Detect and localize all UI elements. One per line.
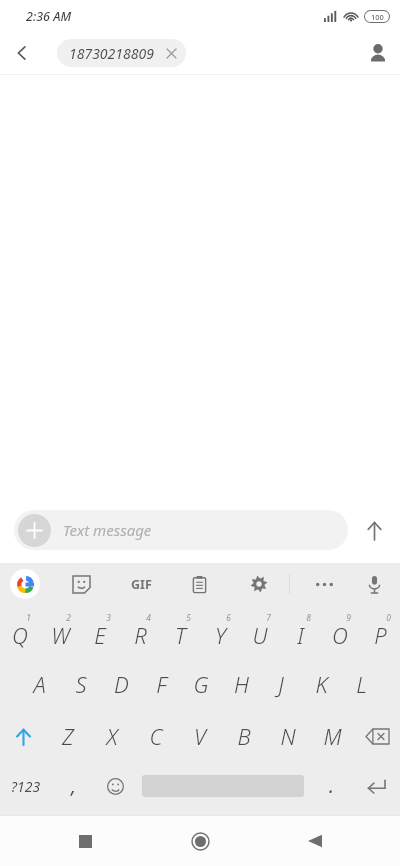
staticText: O — [332, 620, 348, 650]
button[interactable]: Add attachment — [18, 514, 51, 547]
staticText: T — [175, 620, 186, 650]
button[interactable]: U — [240, 605, 280, 658]
staticText: 6 — [226, 612, 231, 624]
button[interactable]: F — [141, 658, 181, 710]
button[interactable]: ?123 — [0, 762, 52, 810]
staticText: . — [329, 773, 334, 799]
staticText: N — [280, 721, 296, 751]
button[interactable]: I — [280, 605, 320, 658]
staticText: D — [114, 669, 129, 699]
button[interactable]: W — [40, 605, 80, 658]
button[interactable]: S — [60, 658, 101, 710]
button[interactable]: Voice input — [358, 568, 390, 600]
button[interactable]: Backspace — [354, 710, 400, 762]
staticText: 1 — [26, 612, 31, 624]
staticText: I — [297, 620, 304, 650]
button[interactable]: Shift — [0, 710, 46, 762]
staticText: 2 — [66, 612, 71, 624]
staticText: 7 — [266, 612, 271, 624]
button[interactable]: Recents — [61, 817, 109, 865]
button[interactable]: Home — [176, 817, 224, 865]
staticText: F — [156, 669, 167, 699]
staticText: G — [193, 669, 209, 699]
button[interactable]: O — [320, 605, 360, 658]
staticText: 9 — [346, 612, 351, 624]
button[interactable]: 18730218809 — [57, 39, 186, 67]
staticText: H — [234, 669, 249, 699]
staticText: 3 — [106, 612, 111, 624]
staticText: 18730218809 — [69, 44, 154, 63]
button[interactable]: Add attachment — [14, 510, 348, 550]
button[interactable]: GIF — [124, 567, 158, 601]
staticText: 5 — [186, 612, 191, 624]
button[interactable]: K — [301, 658, 341, 710]
button[interactable]: Q — [0, 605, 40, 658]
staticText: S — [75, 669, 87, 699]
button[interactable]: More options — [308, 568, 340, 600]
staticText: 2:36 AM — [26, 8, 72, 25]
button[interactable]: V — [178, 710, 222, 762]
staticText: ?123 — [11, 777, 41, 796]
button[interactable]: D — [101, 658, 141, 710]
staticText: C — [149, 721, 163, 751]
staticText: V — [194, 721, 206, 751]
button[interactable]: G — [181, 658, 221, 710]
staticText: Text message — [63, 520, 152, 540]
button[interactable]: Clipboard — [182, 567, 216, 601]
button[interactable]: Stickers — [64, 567, 98, 601]
button[interactable]: E — [80, 605, 120, 658]
button[interactable]: H — [221, 658, 261, 710]
staticText: , — [71, 773, 76, 799]
button[interactable]: A — [19, 658, 60, 710]
staticText: E — [94, 620, 106, 650]
staticText: Y — [215, 620, 226, 650]
staticText: Z — [62, 721, 74, 751]
button[interactable]: X — [90, 710, 134, 762]
button[interactable]: L — [341, 658, 381, 710]
button[interactable]: Google — [10, 569, 40, 599]
button[interactable]: , — [52, 762, 94, 810]
staticText: U — [252, 620, 268, 650]
button[interactable]: J — [261, 658, 301, 710]
button[interactable]: Contact details — [356, 32, 400, 74]
staticText: A — [33, 669, 46, 699]
button[interactable]: B — [222, 710, 266, 762]
button[interactable]: Back — [0, 32, 44, 74]
button[interactable]: Settings — [242, 567, 276, 601]
staticText: B — [237, 721, 251, 751]
button[interactable]: Emoji — [94, 762, 136, 810]
staticText: R — [134, 620, 147, 650]
button[interactable]: N — [266, 710, 310, 762]
button[interactable]: Z — [46, 710, 90, 762]
button[interactable]: Back — [291, 817, 339, 865]
staticText: 8 — [306, 612, 311, 624]
staticText: M — [323, 721, 342, 751]
staticText: X — [106, 721, 118, 751]
staticText: K — [315, 669, 328, 699]
staticText: 0 — [386, 612, 391, 624]
staticText: L — [356, 669, 367, 699]
button[interactable]: Remove recipient — [162, 44, 180, 62]
button[interactable]: Y — [200, 605, 240, 658]
button[interactable]: . — [310, 762, 352, 810]
staticText: GIF — [131, 576, 152, 593]
staticText: P — [374, 620, 387, 650]
staticText: 100 — [371, 12, 384, 22]
button[interactable]: P — [360, 605, 400, 658]
button[interactable]: M — [310, 710, 354, 762]
button[interactable]: R — [120, 605, 160, 658]
staticText: J — [278, 669, 284, 699]
button[interactable]: Enter — [352, 762, 400, 810]
staticText: Q — [12, 620, 28, 650]
button[interactable]: T — [160, 605, 200, 658]
button[interactable]: C — [134, 710, 178, 762]
staticText: 4 — [146, 612, 151, 624]
staticText: W — [51, 620, 70, 650]
button[interactable]: Send — [348, 508, 400, 552]
